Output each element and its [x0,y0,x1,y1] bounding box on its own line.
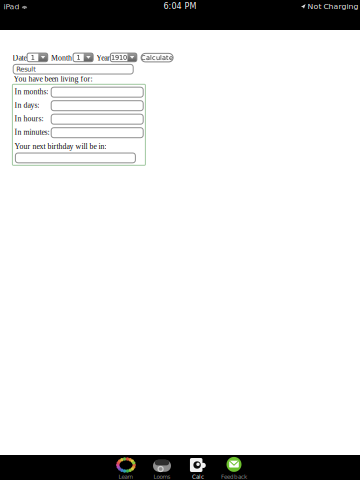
staticText: 1910 [111,54,127,61]
button[interactable]: 1 [73,53,93,62]
staticText: In minutes: [14,128,49,136]
staticText: Month [51,54,72,62]
staticText: 1 [31,54,35,61]
staticText: You have been living for: [13,75,92,83]
staticText: In hours: [14,114,43,123]
staticText: Calculate [141,54,173,61]
staticText: Calc [192,473,204,480]
staticText: 6:04 PM [163,2,196,11]
staticText: In months: [14,87,48,96]
button[interactable]: Calc [180,455,216,480]
staticText: iPad [3,2,19,11]
staticText: In days: [14,101,39,109]
staticText: Not Charging [308,2,359,11]
staticText: Looms [153,473,170,480]
button[interactable]: Feedback [216,455,252,480]
button[interactable]: 1 [27,53,48,62]
button[interactable]: Learn [108,455,144,480]
button[interactable]: 1910 [110,53,137,62]
staticText: Result [16,65,36,73]
staticText: Date [12,54,26,62]
staticText: Year [96,54,110,62]
staticText: Your next birthday will be in: [14,142,106,151]
staticText: Learn [118,473,133,480]
staticText: Feedback [221,473,247,480]
button[interactable]: Calculate [141,53,173,62]
staticText: 1 [76,54,80,61]
button[interactable]: Looms [144,455,180,480]
